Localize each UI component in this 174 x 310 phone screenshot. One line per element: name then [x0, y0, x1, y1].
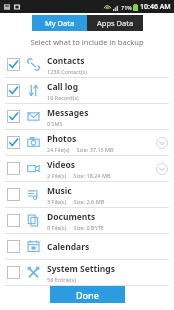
staticText: My Data — [45, 18, 75, 28]
staticText: Contacts — [47, 55, 85, 67]
staticText: System Settings — [47, 263, 115, 275]
staticText: 2 File(s) Size: 18.24 MB — [47, 172, 111, 179]
staticText: 0 SMS — [47, 120, 63, 127]
staticText: 58 Entrie(s) — [47, 276, 76, 283]
staticText: Music — [47, 185, 72, 197]
button[interactable]: Checked — [0, 52, 174, 77]
staticText: Select what to include in backup — [0, 37, 174, 47]
button[interactable]: Checked — [7, 84, 20, 97]
button[interactable]: Done — [50, 286, 125, 303]
button[interactable]: Checked — [0, 130, 174, 155]
staticText: 24 File(s) Size: 37.15 MB — [47, 146, 114, 153]
button[interactable]: Unchecked — [0, 234, 174, 259]
staticText: Messages — [47, 107, 89, 119]
button[interactable]: Expand — [156, 163, 168, 175]
button[interactable]: Unchecked — [7, 188, 20, 201]
staticText: 1238 Contact(s) — [47, 68, 87, 75]
button[interactable]: Checked — [0, 78, 174, 103]
button[interactable]: Unchecked — [7, 266, 20, 279]
button[interactable]: Checked — [7, 136, 20, 149]
staticText: 16 Record(s) — [47, 94, 79, 101]
button[interactable]: Unchecked — [0, 260, 174, 285]
staticText: 3 File(s) Size: 2.6 MB — [47, 198, 105, 205]
button[interactable]: Checked — [0, 104, 174, 129]
staticText: Videos — [47, 159, 76, 171]
button[interactable]: Unchecked — [7, 162, 20, 175]
button[interactable]: Unchecked — [0, 182, 174, 207]
button[interactable]: Expand — [156, 137, 168, 149]
staticText: Apps Data — [97, 18, 134, 28]
staticText: Done — [76, 289, 99, 301]
staticText: 71% — [121, 4, 132, 11]
staticText: Calendars — [47, 241, 90, 253]
button[interactable]: Unchecked — [7, 240, 20, 253]
button[interactable]: Checked — [7, 58, 20, 71]
staticText: Documents — [47, 211, 96, 223]
button[interactable]: Unchecked — [0, 208, 174, 233]
button[interactable]: Checked — [7, 110, 20, 123]
button[interactable]: Unchecked — [7, 214, 20, 227]
button[interactable]: My Data — [32, 15, 87, 31]
staticText: Photos — [47, 133, 77, 145]
button[interactable]: Unchecked — [0, 156, 174, 181]
staticText: 10:46 AM — [140, 2, 171, 12]
staticText: 0 File(s) Size: 0 BYTE — [47, 224, 104, 231]
staticText: Call log — [47, 81, 79, 93]
button[interactable]: Apps Data — [87, 15, 143, 31]
